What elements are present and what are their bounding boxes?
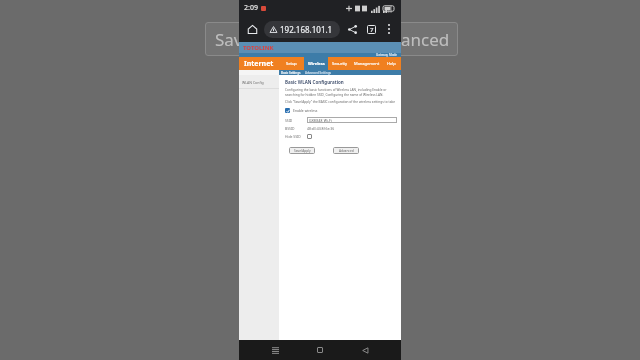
button[interactable]: Home [311,341,329,359]
button[interactable]: Setup [279,57,304,70]
staticText: Wireless [308,61,325,66]
button[interactable]: Help [381,57,401,70]
staticText: Internet [244,59,274,69]
staticText: Setup [286,61,297,66]
button[interactable]: Enable wireless [285,108,318,113]
staticText: GXM348_Wi-Fi [309,118,332,123]
staticText: Click "Save/Apply" the BASIC configurati… [285,100,397,104]
staticText: Gateway Mode [376,53,398,57]
staticText: Save [215,28,253,51]
staticText: SSID [285,118,293,123]
button[interactable]: Management [352,57,381,70]
staticText: BSSID [285,126,295,131]
button[interactable]: Recent apps [266,341,284,359]
staticText: Save/Apply [294,149,311,153]
button[interactable]: WLAN Config [239,79,279,85]
staticText: Advanced Settings [305,71,331,75]
staticText: Security [332,61,348,66]
button[interactable]: Save/Apply [289,147,315,154]
staticText: Basic Settings [281,71,301,75]
staticText: WLAN Config [242,80,264,85]
staticText: Management [354,61,380,66]
staticText: 2:09 [244,3,258,13]
button[interactable]: Back [356,341,374,359]
staticText: Basic WLAN Configuration [285,79,344,85]
button[interactable] [307,134,312,139]
button[interactable]: Security [328,57,352,70]
staticText: 192.168.101.1 [280,24,333,35]
button[interactable]: Tabs [363,21,379,37]
staticText: Configuring the basic functions of Wirel… [285,88,397,92]
button[interactable]: Home [243,20,261,38]
button[interactable]: Advanced [333,147,359,154]
button[interactable]: Wireless [304,57,328,70]
staticText: Hide SSID [285,134,301,139]
staticText: anced [401,28,450,51]
staticText: searching for hidden SSID, Configuring t… [285,93,384,97]
button[interactable]: More options [381,21,397,37]
button[interactable]: GXM348_Wi-Fi [307,117,397,123]
button[interactable]: Share [344,21,360,37]
button[interactable]: 192.168.101.1 [264,21,340,38]
staticText: TOTOLINK [243,44,274,52]
staticText: Enable wireless [293,108,318,113]
staticText: Advanced [339,149,354,153]
staticText: 7 [370,26,374,34]
staticText: 48:d3:43:8f:6e:36 [307,126,335,131]
staticText: Help [387,61,396,66]
